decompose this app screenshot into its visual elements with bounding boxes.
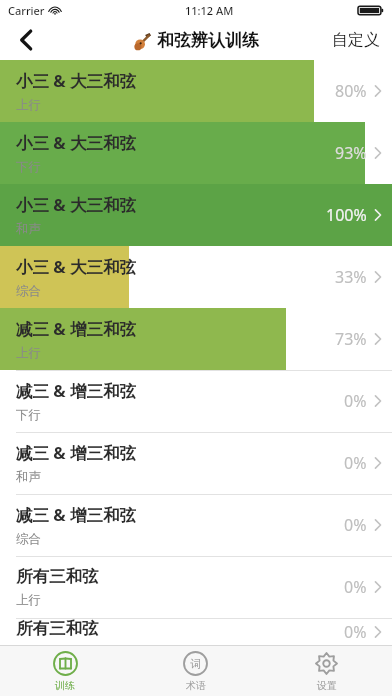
staticText: 和声 — [16, 221, 41, 237]
staticText: 上行 — [16, 97, 41, 113]
button[interactable]: 小三 & 大三和弦 — [0, 246, 392, 308]
staticText: 训练 — [55, 679, 75, 692]
staticText: 0% — [344, 576, 367, 598]
button[interactable]: 小三 & 大三和弦 — [0, 184, 392, 246]
staticText: 小三 & 大三和弦 — [16, 131, 136, 154]
button[interactable]: 小三 & 大三和弦 — [0, 60, 392, 122]
staticText: 93% — [335, 142, 367, 164]
staticText: 自定义 — [332, 30, 380, 50]
button[interactable]: 减三 & 增三和弦 — [0, 308, 392, 370]
staticText: 减三 & 增三和弦 — [16, 317, 136, 340]
button[interactable]: 所有三和弦 — [0, 556, 392, 618]
staticText: 73% — [335, 328, 367, 350]
staticText: 综合 — [16, 531, 41, 547]
button[interactable]: 减三 & 增三和弦 — [0, 370, 392, 432]
staticText: 0% — [344, 390, 367, 412]
staticText: 上行 — [16, 345, 41, 361]
staticText: 减三 & 增三和弦 — [16, 379, 136, 402]
button[interactable]: 词 — [130, 646, 261, 696]
staticText: 下行 — [16, 407, 41, 423]
staticText: 100% — [326, 204, 367, 226]
staticText: 33% — [335, 266, 367, 288]
staticText: 设置 — [317, 679, 337, 692]
staticText: 0% — [344, 514, 367, 536]
staticText: 综合 — [16, 283, 41, 299]
button[interactable]: 训练 — [0, 646, 130, 696]
button[interactable]: 自定义 — [332, 20, 380, 60]
button[interactable]: 小三 & 大三和弦 — [0, 122, 392, 184]
staticText: 上行 — [16, 592, 41, 608]
staticText: 和声 — [16, 469, 41, 485]
button[interactable]: 减三 & 增三和弦 — [0, 494, 392, 556]
button[interactable]: 所有三和弦 — [0, 618, 392, 645]
staticText: 下行 — [16, 159, 41, 175]
staticText: 0% — [344, 452, 367, 474]
staticText: 0% — [344, 621, 367, 643]
staticText: 词 — [190, 657, 201, 671]
staticText: 80% — [335, 80, 367, 102]
staticText: 所有三和弦 — [16, 566, 99, 587]
staticText: 11:12 AM — [185, 3, 234, 18]
staticText: 和弦辨认训练 — [157, 30, 259, 51]
staticText: 减三 & 增三和弦 — [16, 503, 136, 526]
button[interactable]: 设置 — [261, 646, 392, 696]
staticText: 术语 — [186, 679, 206, 692]
staticText: 小三 & 大三和弦 — [16, 193, 136, 216]
button[interactable]: 减三 & 增三和弦 — [0, 432, 392, 494]
staticText: 小三 & 大三和弦 — [16, 255, 136, 278]
staticText: 减三 & 增三和弦 — [16, 441, 136, 464]
staticText: Carrier — [8, 3, 45, 18]
button[interactable]: Back — [0, 20, 52, 60]
staticText: 小三 & 大三和弦 — [16, 69, 136, 92]
staticText: 所有三和弦 — [16, 618, 99, 639]
